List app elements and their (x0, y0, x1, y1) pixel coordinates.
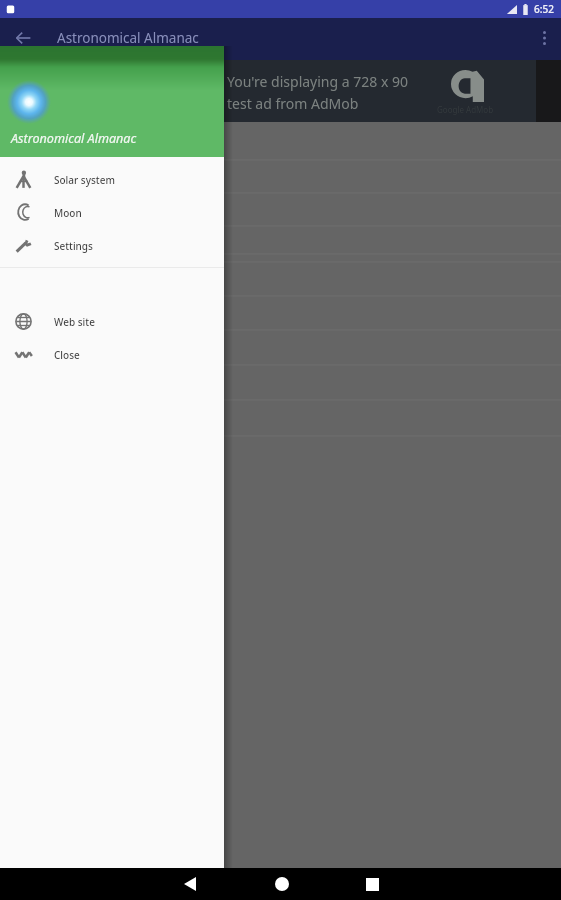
staticText: Google AdMob (437, 104, 494, 115)
staticText: 6:52 (534, 2, 554, 16)
button[interactable]: Back (173, 868, 207, 900)
staticText: Close (54, 348, 80, 362)
button[interactable]: Solar system (0, 163, 224, 196)
button[interactable]: Recent apps (355, 868, 389, 900)
staticText: Astronomical Almanac (57, 29, 199, 47)
button[interactable]: More options (527, 18, 561, 58)
staticText: Astronomical Almanac (11, 130, 137, 147)
staticText: Settings (54, 239, 93, 253)
staticText: test ad from AdMob (227, 94, 359, 113)
button[interactable]: Web site (0, 305, 224, 338)
button[interactable]: Close (0, 338, 224, 371)
button[interactable]: Settings (0, 229, 224, 262)
button[interactable]: Moon (0, 196, 224, 229)
staticText: Moon (54, 206, 82, 220)
staticText: You're displaying a 728 x 90 (227, 72, 408, 91)
button[interactable]: Home (265, 868, 299, 900)
staticText: Web site (54, 315, 95, 329)
button[interactable]: Back (0, 18, 46, 58)
staticText: Solar system (54, 173, 115, 187)
